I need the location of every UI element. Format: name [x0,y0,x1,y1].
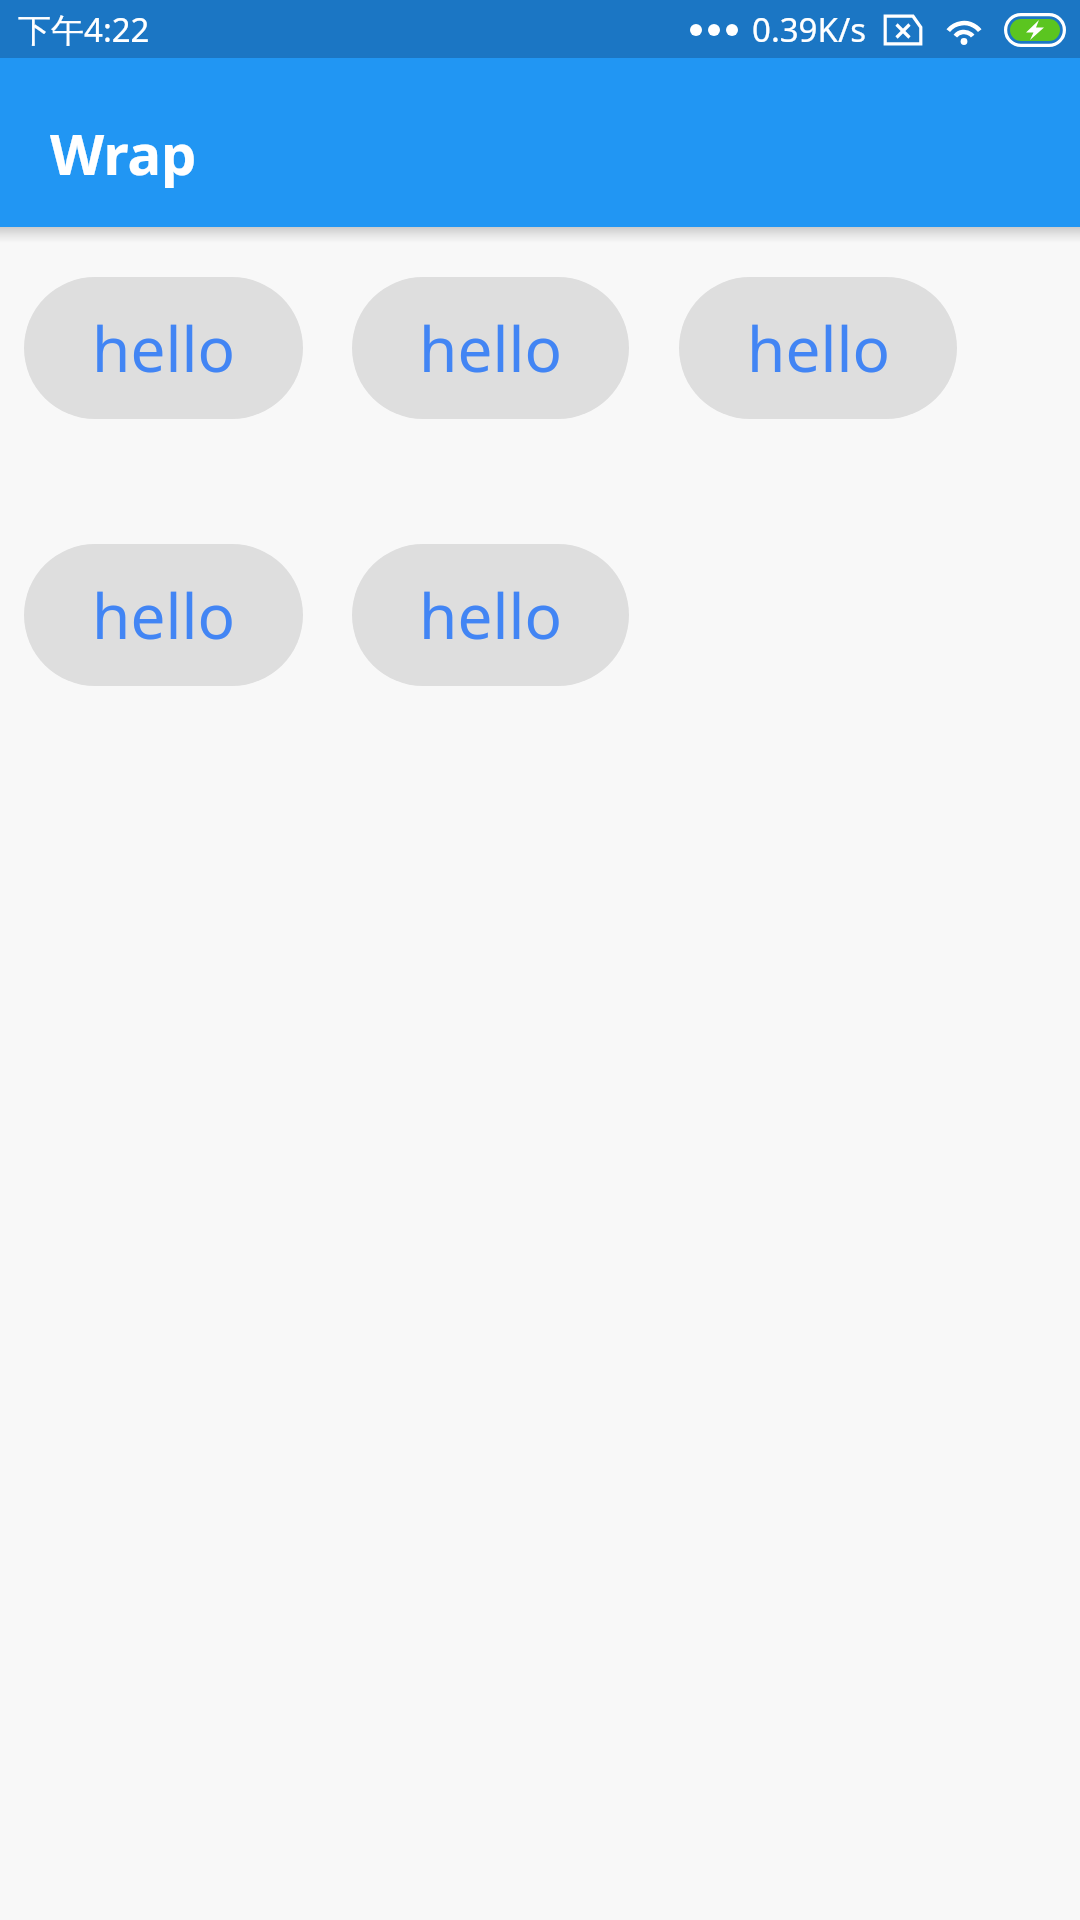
staticText: hello [92,573,235,657]
staticText: 下午4:22 [18,7,150,52]
button[interactable]: hello [24,544,303,686]
button[interactable]: hello [24,277,303,419]
button[interactable]: hello [679,277,957,419]
other: No SIM card [882,13,924,47]
staticText: hello [419,573,562,657]
staticText: Wrap [50,115,197,191]
staticText: hello [747,306,890,390]
staticText: hello [419,306,562,390]
staticText: 0.39K/s [752,7,866,52]
button[interactable]: hello [352,277,629,419]
staticText: hello [92,306,235,390]
other: Wi-Fi [942,13,986,47]
button[interactable]: hello [352,544,629,686]
other: Battery charging [1004,13,1066,47]
